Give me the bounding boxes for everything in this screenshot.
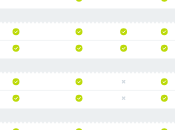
button[interactable]: Done bbox=[70, 74, 88, 90]
button[interactable]: Done bbox=[70, 40, 88, 56]
button[interactable]: Done bbox=[155, 74, 173, 90]
button[interactable]: Done bbox=[155, 40, 173, 56]
button[interactable]: Missed bbox=[115, 74, 133, 90]
button[interactable]: Done bbox=[7, 90, 25, 106]
button[interactable]: Done bbox=[7, 124, 25, 130]
button[interactable]: Missed bbox=[115, 90, 133, 106]
button[interactable]: Done bbox=[155, 124, 173, 130]
button[interactable]: Done bbox=[155, 90, 173, 106]
button[interactable]: Done bbox=[115, 24, 133, 40]
button[interactable]: Done bbox=[70, 24, 88, 40]
button[interactable]: Done bbox=[155, 0, 173, 6]
button[interactable]: Done bbox=[70, 90, 88, 106]
button[interactable]: Done bbox=[70, 124, 88, 130]
button[interactable]: Done bbox=[155, 24, 173, 40]
button[interactable]: Done bbox=[70, 0, 88, 6]
button[interactable]: Done bbox=[115, 40, 133, 56]
button[interactable]: Done bbox=[7, 74, 25, 90]
button[interactable]: Done bbox=[7, 24, 25, 40]
button[interactable]: Done bbox=[7, 40, 25, 56]
